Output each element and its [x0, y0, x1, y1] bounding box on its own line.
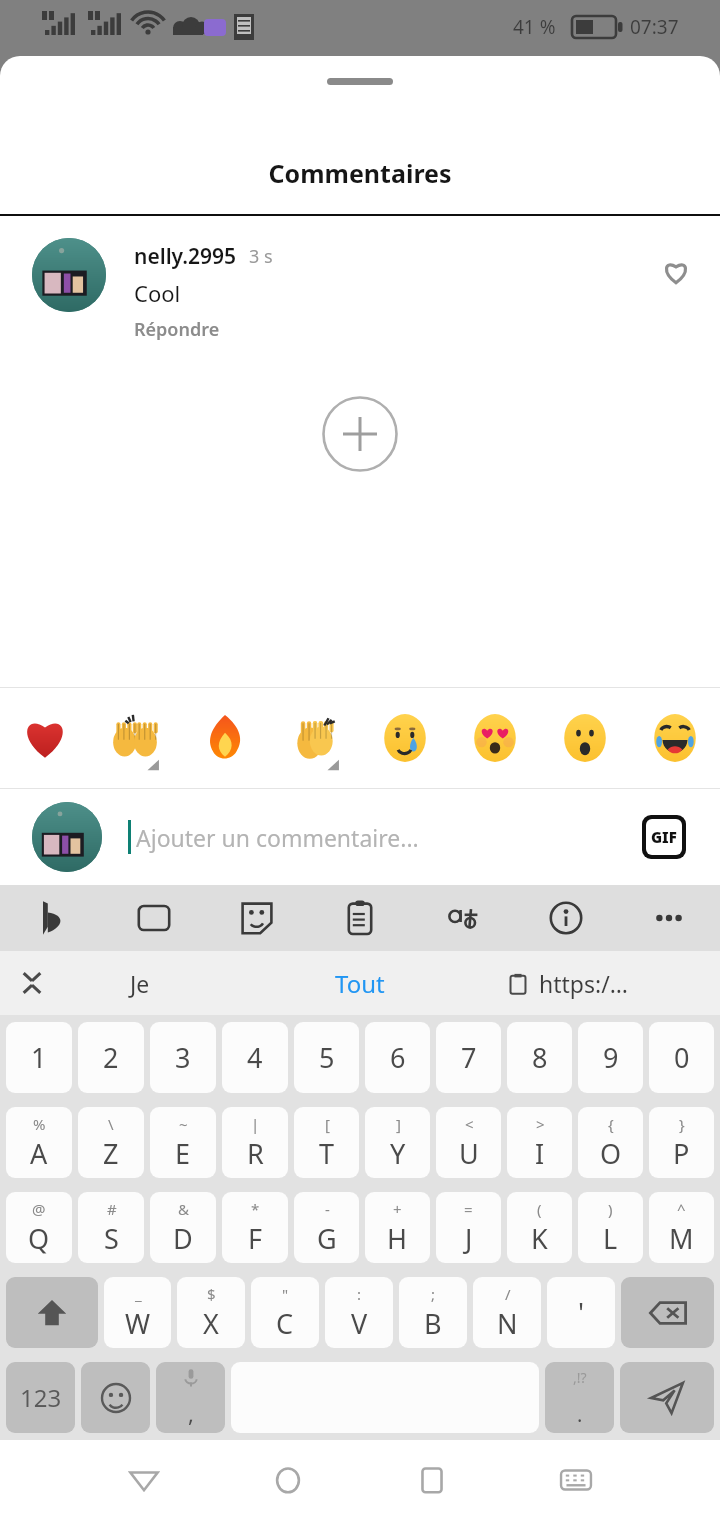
- button[interactable]: =: [436, 1192, 501, 1263]
- button[interactable]: 7: [436, 1022, 501, 1093]
- button[interactable]: Period: [545, 1362, 614, 1433]
- button[interactable]: {: [578, 1107, 643, 1178]
- button[interactable]: [: [294, 1107, 359, 1178]
- button[interactable]: ^: [649, 1192, 714, 1263]
- button[interactable]: 0: [649, 1022, 714, 1093]
- button[interactable]: Emoji 4: [360, 688, 450, 788]
- staticText: /: [505, 1284, 511, 1304]
- button[interactable]: Emoji 6: [540, 688, 630, 788]
- button[interactable]: <: [436, 1107, 501, 1178]
- button[interactable]: ~: [150, 1107, 216, 1178]
- staticText: P: [673, 1135, 690, 1172]
- button[interactable]: \: [78, 1107, 144, 1178]
- button[interactable]: Load more comments: [322, 396, 398, 472]
- button[interactable]: >: [507, 1107, 572, 1178]
- button[interactable]: Toolbar 1: [102, 885, 205, 951]
- button[interactable]: 4: [222, 1022, 288, 1093]
- button[interactable]: Toolbar 4: [411, 885, 514, 951]
- button[interactable]: nelly.2995: [0, 216, 720, 342]
- button[interactable]: ': [547, 1277, 615, 1348]
- button[interactable]: Je: [130, 968, 150, 999]
- staticText: V: [351, 1305, 368, 1342]
- button[interactable]: 9: [578, 1022, 643, 1093]
- button[interactable]: Send: [620, 1362, 714, 1433]
- button[interactable]: |: [222, 1107, 288, 1178]
- staticText: D: [173, 1220, 193, 1257]
- staticText: ;: [431, 1284, 436, 1304]
- button[interactable]: Emoji 2: [180, 688, 270, 788]
- button[interactable]: Emoji 7: [630, 688, 720, 788]
- staticText: <: [465, 1114, 474, 1134]
- button[interactable]: Ajouter un commentaire...: [128, 789, 640, 885]
- button[interactable]: Recent apps: [360, 1440, 504, 1520]
- button[interactable]: 8: [507, 1022, 572, 1093]
- button[interactable]: Toolbar 2: [205, 885, 308, 951]
- button[interactable]: Emoji 5: [450, 688, 540, 788]
- staticText: :: [357, 1284, 362, 1304]
- staticText: %: [33, 1114, 46, 1134]
- staticText: ~: [179, 1114, 188, 1134]
- button[interactable]: Emoji 1: [90, 688, 180, 788]
- button[interactable]: Toolbar 5: [514, 885, 617, 951]
- button[interactable]: ;: [399, 1277, 467, 1348]
- button[interactable]: 1: [6, 1022, 72, 1093]
- button[interactable]: Emoji: [81, 1362, 150, 1433]
- button[interactable]: Home: [216, 1440, 360, 1520]
- staticText: Z: [103, 1135, 119, 1172]
- button[interactable]: GIF: [640, 813, 688, 861]
- staticText: Commentaires: [268, 156, 452, 190]
- button[interactable]: 6: [365, 1022, 430, 1093]
- button[interactable]: -: [294, 1192, 359, 1263]
- button[interactable]: Backspace: [621, 1277, 714, 1348]
- button[interactable]: /: [473, 1277, 541, 1348]
- button[interactable]: 3: [150, 1022, 216, 1093]
- button[interactable]: $: [177, 1277, 245, 1348]
- button[interactable]: *: [222, 1192, 288, 1263]
- button[interactable]: Like comment: [654, 250, 698, 294]
- staticText: https:/…: [539, 968, 628, 999]
- button[interactable]: Toolbar 3: [308, 885, 411, 951]
- button[interactable]: +: [365, 1192, 430, 1263]
- button[interactable]: Back: [72, 1440, 216, 1520]
- staticText: Ajouter un commentaire...: [136, 822, 419, 853]
- button[interactable]: https:/…: [507, 968, 628, 999]
- button[interactable]: [32, 238, 106, 312]
- button[interactable]: Emoji 3: [270, 688, 360, 788]
- button[interactable]: &: [150, 1192, 216, 1263]
- button[interactable]: #: [78, 1192, 144, 1263]
- staticText: Y: [390, 1135, 406, 1172]
- button[interactable]: Répondre: [134, 317, 220, 342]
- button[interactable]: Shift: [6, 1277, 98, 1348]
- staticText: >: [536, 1114, 545, 1134]
- button[interactable]: _: [104, 1277, 171, 1348]
- button[interactable]: @: [6, 1192, 72, 1263]
- button[interactable]: Collapse: [8, 959, 56, 1007]
- staticText: F: [248, 1220, 263, 1257]
- button[interactable]: Toolbar 6: [617, 885, 720, 951]
- button[interactable]: Tout: [335, 967, 385, 1000]
- button[interactable]: Emoji 0: [0, 688, 90, 788]
- button[interactable]: [32, 802, 102, 872]
- button[interactable]: ]: [365, 1107, 430, 1178]
- staticText: ": [282, 1284, 289, 1304]
- button[interactable]: %: [6, 1107, 72, 1178]
- staticText: (: [537, 1199, 542, 1219]
- staticText: ,: [188, 1398, 194, 1428]
- staticText: {: [608, 1114, 614, 1134]
- button[interactable]: 2: [78, 1022, 144, 1093]
- staticText: nelly.2995: [134, 242, 237, 271]
- button[interactable]: Keyboard: [504, 1440, 648, 1520]
- button[interactable]: 123: [6, 1362, 75, 1433]
- button[interactable]: ": [251, 1277, 319, 1348]
- staticText: U: [459, 1135, 479, 1172]
- staticText: W: [125, 1305, 151, 1342]
- staticText: $: [207, 1284, 216, 1304]
- button[interactable]: Voice input, comma: [156, 1362, 225, 1433]
- button[interactable]: 5: [294, 1022, 359, 1093]
- button[interactable]: Toolbar 0: [0, 885, 102, 951]
- button[interactable]: }: [649, 1107, 714, 1178]
- button[interactable]: :: [325, 1277, 393, 1348]
- button[interactable]: ): [578, 1192, 643, 1263]
- button[interactable]: (: [507, 1192, 572, 1263]
